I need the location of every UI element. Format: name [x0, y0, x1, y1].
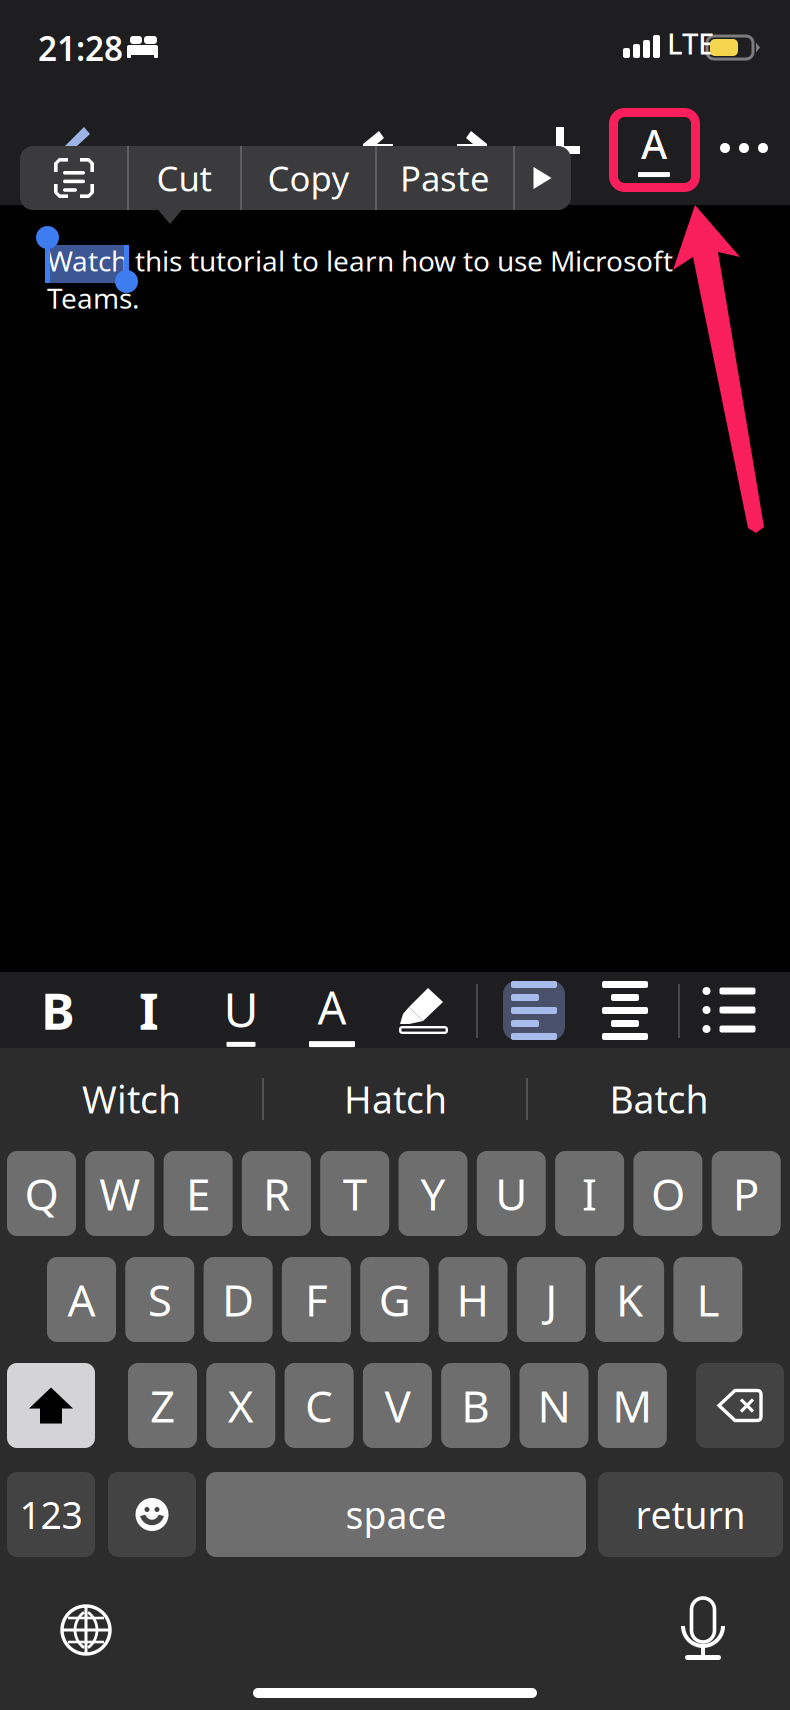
button[interactable]: L: [673, 1257, 742, 1342]
button[interactable]: Shift: [7, 1363, 95, 1448]
button[interactable]: Bold: [28, 980, 88, 1040]
button[interactable]: Delete: [696, 1363, 784, 1448]
staticText: A: [317, 977, 346, 1037]
button[interactable]: T: [320, 1151, 389, 1236]
staticText: Y: [420, 1164, 445, 1223]
button[interactable]: Hatch: [264, 1058, 527, 1140]
button[interactable]: Copy: [242, 146, 375, 210]
staticText: A: [641, 117, 667, 170]
staticText: O: [651, 1164, 685, 1223]
button[interactable]: Font colour: [302, 978, 362, 1046]
button[interactable]: Highlight: [399, 988, 449, 1034]
staticText: Copy: [267, 155, 349, 201]
staticText: U: [495, 1164, 527, 1223]
staticText: H: [456, 1270, 489, 1329]
staticText: 123: [19, 1490, 82, 1539]
button[interactable]: W: [85, 1151, 154, 1236]
button[interactable]: Scan text: [21, 146, 127, 210]
button[interactable]: space: [206, 1472, 586, 1557]
staticText: N: [537, 1376, 570, 1435]
button[interactable]: R: [242, 1151, 311, 1236]
button[interactable]: More options: [720, 142, 768, 154]
button[interactable]: V: [363, 1363, 432, 1448]
staticText: Batch: [609, 1074, 708, 1124]
staticText: 21:28: [38, 26, 123, 70]
staticText: D: [222, 1270, 254, 1329]
button[interactable]: Q: [7, 1151, 76, 1236]
button[interactable]: M: [598, 1363, 667, 1448]
button[interactable]: O: [633, 1151, 702, 1236]
staticText: P: [733, 1164, 760, 1223]
staticText: Q: [24, 1164, 58, 1223]
staticText: Cut: [156, 155, 212, 201]
staticText: R: [263, 1164, 290, 1223]
staticText: LTE: [667, 23, 714, 62]
button[interactable]: Bulleted list: [701, 983, 757, 1037]
button[interactable]: Cut: [129, 146, 240, 210]
staticText: Z: [150, 1376, 175, 1435]
button[interactable]: A: [47, 1257, 116, 1342]
button[interactable]: K: [595, 1257, 664, 1342]
staticText: Witch: [82, 1074, 181, 1124]
staticText: I: [582, 1164, 597, 1223]
button[interactable]: return: [598, 1472, 783, 1557]
button[interactable]: Text formatting: [637, 129, 671, 165]
button[interactable]: Next keyboard: [61, 1605, 111, 1655]
button[interactable]: B: [441, 1363, 510, 1448]
staticText: B: [461, 1376, 490, 1435]
staticText: G: [379, 1270, 411, 1329]
staticText: S: [148, 1270, 172, 1329]
button[interactable]: G: [360, 1257, 429, 1342]
button[interactable]: 123: [7, 1472, 95, 1557]
button[interactable]: F: [282, 1257, 351, 1342]
button[interactable]: S: [125, 1257, 194, 1342]
button[interactable]: I: [555, 1151, 624, 1236]
button[interactable]: Italic: [119, 980, 179, 1040]
staticText: space: [345, 1490, 446, 1539]
staticText: I: [139, 976, 159, 1044]
staticText: Hatch: [344, 1074, 447, 1124]
button[interactable]: Paste: [377, 146, 513, 210]
staticText: M: [612, 1376, 652, 1435]
button[interactable]: D: [204, 1257, 273, 1342]
button[interactable]: Align centre: [601, 981, 649, 1040]
staticText: K: [616, 1270, 643, 1329]
staticText: W: [99, 1164, 140, 1223]
button[interactable]: Batch: [528, 1058, 790, 1140]
button[interactable]: P: [712, 1151, 781, 1236]
staticText: return: [635, 1490, 745, 1539]
staticText: X: [228, 1376, 254, 1435]
staticText: F: [305, 1270, 328, 1329]
button[interactable]: More actions: [515, 146, 570, 210]
button[interactable]: Witch: [0, 1058, 263, 1140]
button[interactable]: N: [519, 1363, 588, 1448]
staticText: J: [545, 1270, 557, 1329]
button[interactable]: E: [164, 1151, 233, 1236]
staticText: Paste: [400, 155, 490, 201]
button[interactable]: Y: [398, 1151, 467, 1236]
staticText: V: [384, 1376, 410, 1435]
staticText: E: [186, 1164, 210, 1223]
staticText: Watch this tutorial to learn how to use …: [47, 242, 673, 316]
button[interactable]: Emoji: [108, 1472, 196, 1557]
button[interactable]: X: [206, 1363, 275, 1448]
button[interactable]: Dictate: [678, 1598, 728, 1662]
button[interactable]: Underline: [211, 978, 271, 1046]
staticText: A: [67, 1270, 95, 1329]
button[interactable]: H: [438, 1257, 507, 1342]
staticText: L: [696, 1270, 719, 1329]
button[interactable]: Z: [128, 1363, 197, 1448]
button[interactable]: C: [285, 1363, 354, 1448]
staticText: B: [41, 976, 75, 1044]
staticText: U: [223, 977, 258, 1041]
button[interactable]: U: [477, 1151, 546, 1236]
button[interactable]: Align left: [503, 981, 565, 1040]
button[interactable]: J: [517, 1257, 586, 1342]
staticText: T: [343, 1164, 367, 1223]
staticText: C: [305, 1376, 333, 1435]
